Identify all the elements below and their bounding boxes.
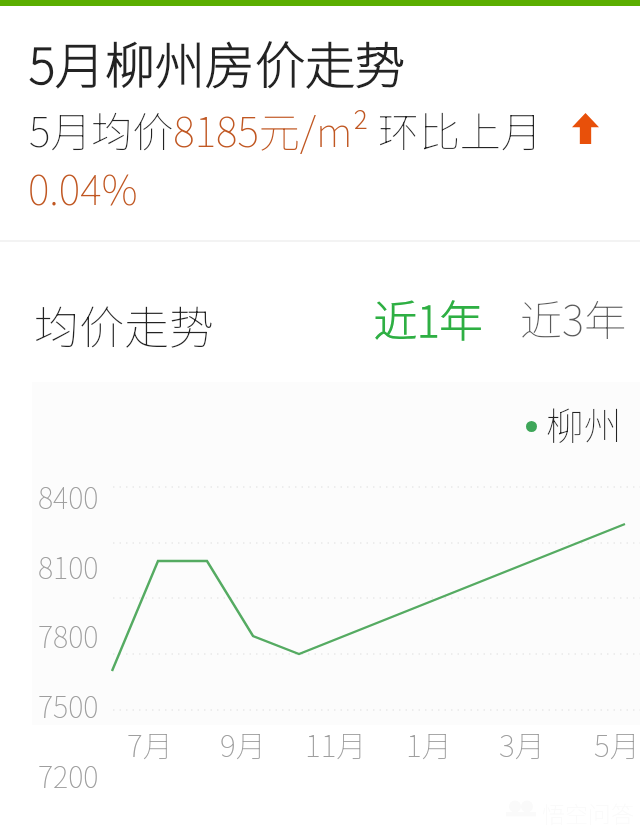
staticText: 5月均价8185元/m² 环比上月 (29, 99, 542, 158)
staticText: 0.04% (28, 157, 138, 216)
staticText: 3月 (499, 722, 545, 765)
staticText: 7800 (38, 614, 99, 656)
staticText: 11月 (305, 722, 367, 765)
staticText: 近3年 (520, 287, 626, 348)
staticText: 5月 (594, 722, 640, 765)
button[interactable]: 近3年 (520, 287, 626, 348)
staticText: 7500 (38, 684, 99, 726)
staticText: 近1年 (374, 287, 483, 349)
staticText: 1月 (406, 722, 452, 765)
staticText: 柳州 (546, 396, 623, 451)
staticText: 5月柳州房价走势 (29, 26, 406, 98)
other: 环比上涨 (572, 113, 599, 144)
staticText: 均价走势 (34, 292, 215, 357)
button[interactable]: 近1年 (374, 287, 483, 349)
staticText: 8400 (38, 475, 99, 517)
staticText: 8100 (38, 545, 99, 587)
staticText: 9月 (220, 722, 266, 765)
staticText: 7200 (38, 754, 99, 796)
staticText: 7月 (127, 722, 173, 765)
